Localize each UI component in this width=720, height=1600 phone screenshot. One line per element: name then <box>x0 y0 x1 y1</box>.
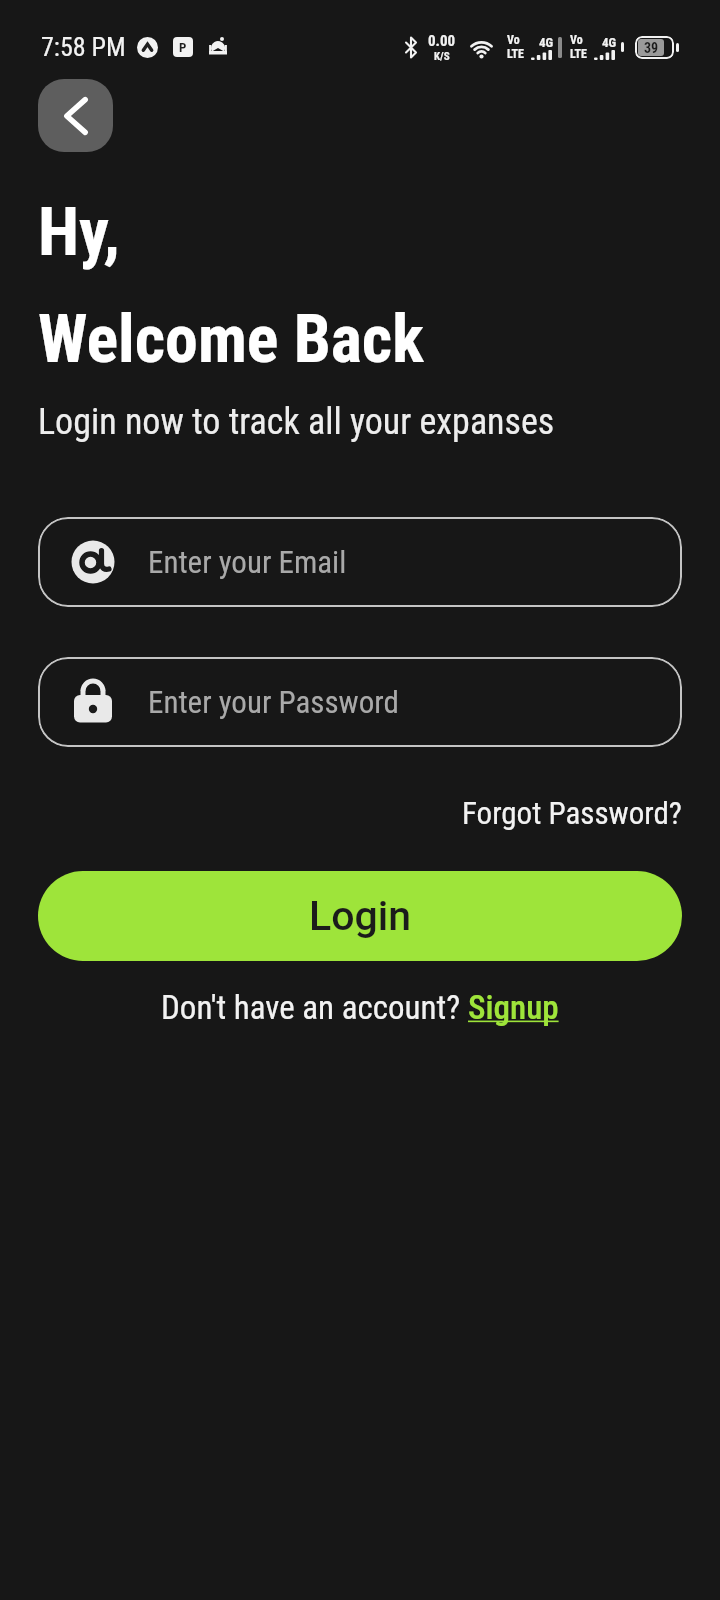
staticText: 7:58 PM <box>41 32 126 62</box>
staticText: 0.00 <box>428 32 456 50</box>
staticText: Enter your Email <box>148 544 347 580</box>
staticText: Vo <box>507 33 520 47</box>
staticText: LTE <box>570 47 587 61</box>
button[interactable]: Login <box>38 871 682 961</box>
staticText: P <box>179 40 187 55</box>
staticText: Login <box>309 892 412 940</box>
button[interactable]: Forgot Password? <box>462 795 682 831</box>
staticText: Hy, <box>38 193 121 272</box>
staticText: Welcome Back <box>38 301 424 378</box>
staticText: 4G <box>602 35 617 50</box>
staticText: Vo <box>570 33 583 47</box>
staticText: 39 <box>644 40 659 56</box>
staticText: Login now to track all your expanses <box>38 401 555 443</box>
staticText: Enter your Password <box>148 684 399 720</box>
button[interactable]: Enter your Password <box>38 657 682 747</box>
staticText: Don't have an account? <box>161 988 468 1027</box>
button[interactable]: Enter your Email <box>38 517 682 607</box>
staticText: 4G <box>539 35 554 50</box>
button[interactable]: Signup <box>468 988 559 1027</box>
staticText: K/S <box>434 50 450 63</box>
button[interactable] <box>38 79 113 152</box>
staticText: LTE <box>507 47 524 61</box>
